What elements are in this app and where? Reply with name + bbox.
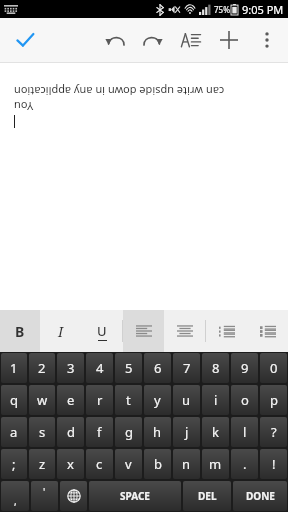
button[interactable]: w [29, 385, 55, 415]
button[interactable]: j [173, 417, 200, 447]
button[interactable]: x [57, 449, 84, 479]
button[interactable]: b [144, 449, 171, 479]
staticText: r [97, 391, 103, 409]
staticText: c [96, 455, 103, 473]
button[interactable]: You can write upside down in any applica… [0, 62, 288, 310]
button[interactable]: t [115, 385, 142, 415]
button[interactable]: Undo [96, 20, 134, 60]
staticText: l [243, 423, 247, 441]
staticText: q [10, 391, 18, 409]
button[interactable]: 8 [202, 353, 229, 383]
staticText: y [154, 391, 161, 409]
button[interactable]: p [260, 385, 287, 415]
button[interactable]: v [115, 449, 142, 479]
staticText: b [154, 455, 162, 473]
button[interactable]: Align left [123, 310, 164, 352]
button[interactable]: r [86, 385, 113, 415]
staticText: DONE [246, 489, 275, 503]
button[interactable]: Change keyboard [60, 481, 87, 511]
button[interactable]: ! [260, 449, 287, 479]
staticText: i [214, 391, 218, 409]
button[interactable]: 4 [86, 353, 113, 383]
button[interactable]: Bullet list [247, 310, 288, 352]
staticText: m [209, 455, 222, 473]
button[interactable]: 3 [57, 353, 84, 383]
button[interactable]: Redo [134, 20, 172, 60]
button[interactable]: . [231, 449, 258, 479]
button[interactable]: 6 [144, 353, 171, 383]
staticText: . [243, 455, 247, 473]
button[interactable]: SPACE [89, 481, 181, 511]
button[interactable]: z [29, 449, 55, 479]
button[interactable]: Add [210, 20, 248, 60]
staticText: n [182, 455, 191, 473]
staticText: B [15, 322, 25, 341]
button[interactable]: 7 [173, 353, 200, 383]
button[interactable]: o [231, 385, 258, 415]
staticText: ' [43, 485, 46, 499]
staticText: 5 [125, 359, 133, 377]
button[interactable]: d [57, 417, 84, 447]
staticText: u [182, 391, 191, 409]
staticText: g [125, 423, 133, 441]
staticText: You can write upside down in any applica… [14, 84, 274, 114]
staticText: 9:05 PM [242, 2, 284, 17]
staticText: , [14, 494, 17, 508]
button[interactable]: 5 [115, 353, 142, 383]
staticText: 9 [241, 359, 249, 377]
button[interactable]: 2 [29, 353, 55, 383]
staticText: o [241, 391, 249, 409]
button[interactable]: More options [248, 20, 286, 60]
button[interactable]: i [202, 385, 229, 415]
staticText: x [67, 455, 74, 473]
staticText: w [37, 391, 48, 409]
button[interactable]: m [202, 449, 229, 479]
button[interactable]: q [1, 385, 27, 415]
button[interactable]: Align center [164, 310, 205, 352]
staticText: v [125, 455, 132, 473]
button[interactable]: Numbered list [206, 310, 247, 352]
button[interactable]: l [231, 417, 258, 447]
staticText: 3 [67, 359, 75, 377]
button[interactable]: a [1, 417, 27, 447]
button[interactable]: Italic [40, 310, 81, 352]
staticText: p [270, 391, 278, 409]
staticText: 75% [214, 4, 230, 15]
button[interactable]: e [57, 385, 84, 415]
staticText: 6 [154, 359, 162, 377]
button[interactable]: 9 [231, 353, 258, 383]
button[interactable]: f [86, 417, 113, 447]
button[interactable]: ; [1, 449, 27, 479]
button[interactable]: c [86, 449, 113, 479]
button[interactable]: u [173, 385, 200, 415]
staticText: f [97, 423, 102, 441]
staticText: 0 [270, 359, 278, 377]
staticText: a [10, 423, 18, 441]
staticText: 8 [212, 359, 220, 377]
button[interactable]: , [1, 481, 29, 511]
button[interactable]: y [144, 385, 171, 415]
button[interactable]: 0 [260, 353, 287, 383]
button[interactable]: Bold [0, 310, 40, 352]
staticText: s [39, 423, 46, 441]
button[interactable]: h [144, 417, 171, 447]
staticText: t [126, 391, 131, 409]
button[interactable]: n [173, 449, 200, 479]
staticText: j [185, 423, 189, 441]
button[interactable]: Done [6, 20, 44, 60]
staticText: ? [271, 423, 277, 441]
button[interactable]: 1 [1, 353, 27, 383]
staticText: 2 [38, 359, 46, 377]
button[interactable]: ' [31, 481, 58, 511]
staticText: z [39, 455, 46, 473]
staticText: e [67, 391, 75, 409]
button[interactable]: k [202, 417, 229, 447]
button[interactable]: ? [260, 417, 287, 447]
button[interactable]: s [29, 417, 55, 447]
staticText: ; [12, 455, 16, 473]
button[interactable]: g [115, 417, 142, 447]
button[interactable]: Text format [172, 20, 210, 60]
button[interactable]: Underline [81, 310, 122, 352]
button[interactable]: DEL [183, 481, 231, 511]
button[interactable]: DONE [233, 481, 287, 511]
